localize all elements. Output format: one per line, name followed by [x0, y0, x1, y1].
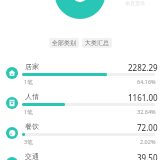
button[interactable]: 居家	[0, 58, 160, 88]
staticText: 居家	[25, 62, 39, 71]
button[interactable]: 餐饮	[0, 118, 160, 148]
staticText: 餐饮	[25, 122, 39, 131]
staticText: 72.00	[137, 122, 158, 133]
staticText: 64.16%	[137, 78, 156, 85]
staticText: 3笔	[24, 138, 33, 146]
staticText: 2.02%	[140, 138, 156, 145]
staticText: 1161.00	[128, 92, 158, 103]
staticText: 本月支出	[125, 0, 145, 6]
staticText: 32.64%	[137, 108, 156, 115]
staticText: 2282.29	[128, 62, 158, 73]
staticText: 39.50	[137, 152, 158, 160]
button[interactable]: 人情	[0, 88, 160, 118]
staticText: 1笔	[24, 108, 33, 116]
button[interactable]: 全部类别	[49, 38, 79, 48]
staticText: 人情	[25, 92, 39, 101]
staticText: 交通	[25, 152, 39, 160]
other: 支出分类环形图	[0, 0, 160, 160]
button[interactable]: 大类汇总	[82, 38, 112, 48]
button[interactable]: 交通	[0, 148, 160, 160]
staticText: 大类汇总	[85, 39, 109, 47]
staticText: 1笔	[24, 78, 33, 86]
staticText: 全部类别	[52, 39, 76, 47]
